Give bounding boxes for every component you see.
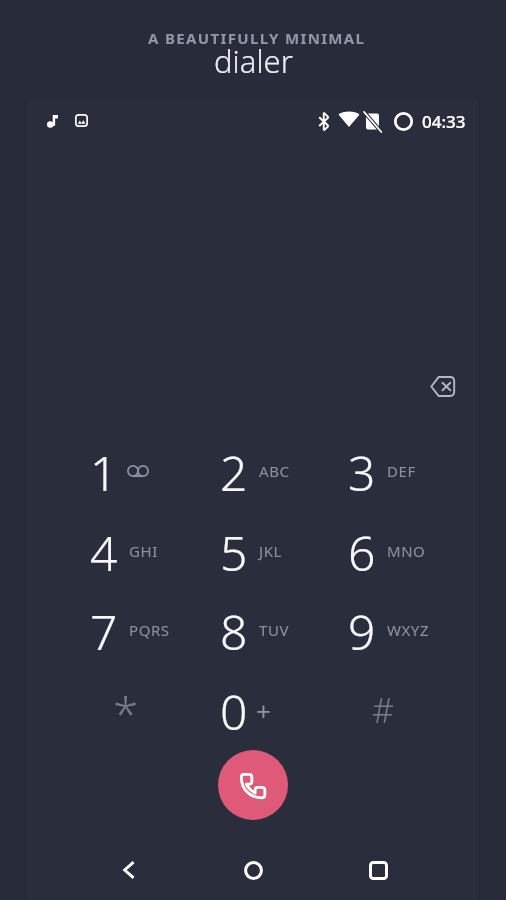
button[interactable]: 4	[66, 520, 176, 582]
staticText: A BEAUTIFULLY MINIMAL	[148, 28, 366, 48]
staticText: 3	[348, 440, 376, 502]
button[interactable]: *	[83, 682, 173, 744]
staticText: 8	[220, 599, 248, 661]
button[interactable]: 8	[196, 599, 306, 661]
staticText: 9	[348, 599, 376, 661]
staticText: 1	[90, 440, 118, 502]
staticText: 7	[90, 599, 118, 661]
button[interactable]: 1	[66, 440, 176, 502]
button[interactable]: Back	[96, 842, 162, 898]
button[interactable]: 0	[196, 679, 306, 741]
button[interactable]: Backspace	[421, 364, 465, 408]
button[interactable]: Call	[218, 750, 288, 820]
staticText: DEF	[387, 461, 416, 481]
staticText: GHI	[129, 541, 158, 561]
button[interactable]: Home	[220, 842, 286, 898]
staticText: *	[113, 682, 139, 744]
staticText: ABC	[259, 461, 290, 481]
staticText: JKL	[259, 541, 282, 561]
button[interactable]: Recents	[345, 842, 411, 898]
button[interactable]: 5	[196, 520, 306, 582]
button[interactable]: 2	[196, 440, 306, 502]
staticText: 5	[220, 520, 248, 582]
staticText: 6	[348, 520, 376, 582]
button[interactable]: #	[342, 679, 432, 741]
staticText: dialer	[214, 40, 293, 82]
staticText: 04:33	[422, 110, 466, 133]
staticText: 2	[220, 440, 248, 502]
staticText: TUV	[259, 620, 289, 640]
button[interactable]: 7	[66, 599, 176, 661]
staticText: #	[372, 687, 394, 733]
button[interactable]: 3	[324, 440, 434, 502]
staticText: 4	[90, 520, 118, 582]
button[interactable]: 6	[324, 520, 434, 582]
staticText: +	[256, 693, 272, 728]
staticText: PQRS	[129, 620, 170, 640]
staticText: MNO	[387, 541, 426, 561]
staticText: 0	[220, 679, 248, 741]
staticText: WXYZ	[387, 620, 430, 640]
button[interactable]: 9	[324, 599, 434, 661]
